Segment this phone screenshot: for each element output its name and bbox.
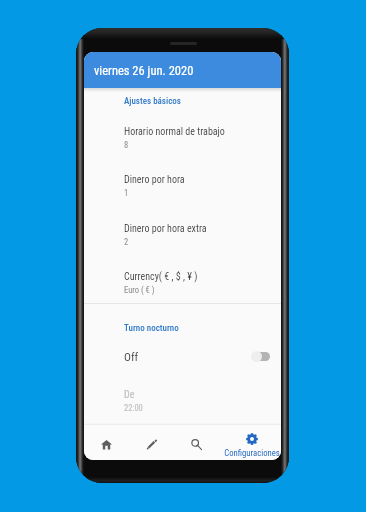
button[interactable]: Currency( € , $ , ¥ ) bbox=[84, 267, 281, 303]
staticText: 22:00 bbox=[124, 403, 143, 413]
staticText: Turno nocturno bbox=[124, 323, 179, 334]
staticText: Off bbox=[124, 350, 139, 363]
button[interactable]: Dinero por hora extra bbox=[84, 219, 281, 255]
staticText: Configuraciones bbox=[221, 448, 281, 458]
button[interactable]: Horario normal de trabajo bbox=[84, 122, 281, 158]
button[interactable]: Home bbox=[84, 425, 129, 460]
staticText: Horario normal de trabajo bbox=[124, 126, 225, 138]
staticText: Ajustes básicos bbox=[124, 96, 181, 107]
staticText: Dinero por hora extra bbox=[124, 223, 207, 235]
staticText: Dinero por hora bbox=[124, 174, 185, 186]
button[interactable]: Configuraciones bbox=[219, 425, 281, 460]
staticText: 1 bbox=[124, 188, 129, 198]
staticText: 2 bbox=[124, 237, 129, 247]
button[interactable]: Off bbox=[84, 341, 281, 371]
button[interactable]: De bbox=[84, 385, 281, 421]
staticText: Euro ( € ) bbox=[124, 285, 155, 295]
staticText: Currency( € , $ , ¥ ) bbox=[124, 271, 198, 283]
staticText: 8 bbox=[124, 140, 129, 150]
button[interactable]: Dinero por hora bbox=[84, 170, 281, 206]
button[interactable]: Edit bbox=[129, 425, 174, 460]
button[interactable]: Search bbox=[174, 425, 219, 460]
staticText: De bbox=[124, 389, 135, 401]
staticText: viernes 26 jun. 2020 bbox=[94, 63, 194, 78]
